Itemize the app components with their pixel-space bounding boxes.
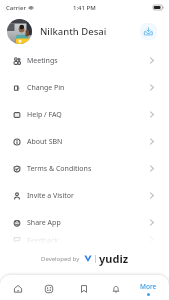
button[interactable]: Invite a Visitor: [0, 182, 169, 209]
button[interactable]: Terms & Conditions: [0, 155, 169, 182]
button[interactable]: Share App: [0, 209, 169, 236]
button[interactable]: Help / FAQ: [0, 101, 169, 128]
staticText: Developed by: [41, 255, 80, 263]
staticText: Invite a Visitor: [27, 191, 74, 201]
button[interactable]: Change Pin: [0, 74, 169, 101]
button[interactable]: Inbox: [140, 23, 157, 40]
staticText: Help / FAQ: [27, 110, 62, 120]
staticText: About SBN: [27, 137, 63, 147]
staticText: Feedback: [27, 236, 59, 243]
staticText: More: [140, 282, 157, 291]
staticText: Terms & Conditions: [27, 164, 92, 174]
staticText: Share App: [27, 218, 61, 228]
staticText: Carrier: [6, 4, 26, 12]
button[interactable]: More: [135, 275, 161, 300]
staticText: Nilkanth Desai: [40, 25, 107, 38]
staticText: Meetings: [27, 56, 58, 66]
staticText: 1:41 PM: [73, 4, 96, 12]
button[interactable]: Dashboard: [36, 275, 62, 300]
staticText: yudiz: [99, 251, 129, 266]
button[interactable]: Bookmarks: [71, 275, 97, 300]
button[interactable]: Meetings: [0, 47, 169, 74]
button[interactable]: Home: [5, 275, 31, 300]
button[interactable]: Feedback: [0, 236, 169, 243]
button[interactable]: Notifications: [103, 275, 129, 300]
staticText: Change Pin: [27, 83, 65, 93]
button[interactable]: About SBN: [0, 128, 169, 155]
